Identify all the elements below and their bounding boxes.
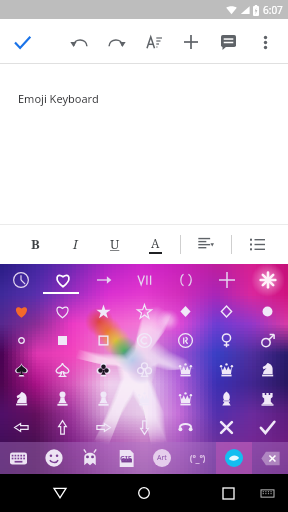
button[interactable]: bishop (206, 384, 247, 413)
button[interactable]: knightW (247, 355, 288, 384)
button[interactable]: Redo (99, 24, 135, 60)
button[interactable]: Bulleted list (244, 231, 270, 257)
button[interactable]: Category clock (0, 264, 42, 296)
button[interactable]: Keyboard (0, 442, 36, 474)
button[interactable]: Undo (61, 24, 97, 60)
button[interactable]: Text color (142, 231, 168, 257)
button[interactable]: male (247, 326, 288, 355)
staticText: GIF (120, 454, 132, 464)
button[interactable]: phone (165, 413, 206, 442)
button[interactable]: spadeO (42, 355, 83, 384)
button[interactable]: clubB (83, 355, 124, 384)
button[interactable]: Home (128, 477, 160, 509)
button[interactable]: heartF (0, 296, 42, 326)
button[interactable]: pawnO (83, 384, 124, 413)
button[interactable]: arrowU (42, 413, 83, 442)
staticText: A (151, 235, 160, 251)
button[interactable]: Back (44, 477, 76, 509)
button[interactable]: tick (247, 413, 288, 442)
button[interactable]: circleF (247, 296, 288, 326)
button[interactable]: crownW (165, 355, 206, 384)
button[interactable]: Category arrow (83, 264, 124, 296)
button[interactable]: heartO (42, 296, 83, 326)
button[interactable]: crownW3 (124, 384, 165, 413)
button[interactable]: pawnF (42, 384, 83, 413)
button[interactable]: ex (206, 413, 247, 442)
button[interactable]: Category heart (42, 264, 83, 296)
button[interactable]: Backspace (252, 442, 288, 474)
button[interactable]: Underline (102, 231, 128, 257)
button[interactable]: Text formatting (136, 24, 172, 60)
button[interactable]: Recents (212, 477, 244, 509)
button[interactable]: Category plus (206, 264, 247, 296)
button[interactable]: rook (247, 384, 288, 413)
staticText: Emoji Keyboard (18, 91, 99, 106)
staticText: U (110, 235, 120, 253)
button[interactable]: Category paren (165, 264, 206, 296)
button[interactable]: Theme (216, 442, 252, 474)
staticText: B (31, 235, 40, 253)
button[interactable]: Stickers (72, 442, 108, 474)
button[interactable]: Add (173, 24, 209, 60)
button[interactable]: starF (83, 296, 124, 326)
button[interactable]: Category numeral (124, 264, 165, 296)
button[interactable]: squareO (83, 326, 124, 355)
button[interactable]: crownW4 (165, 384, 206, 413)
button[interactable]: squareF (42, 326, 83, 355)
staticText: Art (157, 453, 167, 463)
button[interactable]: knightO (0, 384, 42, 413)
button[interactable]: starO (124, 296, 165, 326)
button[interactable]: Done (4, 24, 40, 60)
button[interactable]: Alignment (193, 231, 219, 257)
button[interactable]: crownW2 (206, 355, 247, 384)
button[interactable]: Comment (210, 24, 246, 60)
button[interactable]: Category star (247, 264, 288, 296)
button[interactable]: Switch keyboard (253, 479, 281, 507)
button[interactable]: circleO (0, 326, 42, 355)
button[interactable]: copy (124, 326, 165, 355)
staticText: 6:07 (263, 3, 283, 17)
button[interactable]: Emoji (36, 442, 72, 474)
staticText: I (73, 235, 78, 253)
button[interactable]: Italic (62, 231, 88, 257)
button[interactable]: arrowR (83, 413, 124, 442)
button[interactable]: diamondF (165, 296, 206, 326)
button[interactable]: Art (144, 442, 180, 474)
button[interactable]: Kaomoji (180, 442, 216, 474)
button[interactable]: female (206, 326, 247, 355)
button[interactable]: More options (247, 24, 283, 60)
button[interactable]: clubO (124, 355, 165, 384)
button[interactable]: GIF (108, 442, 144, 474)
button[interactable]: arrowL (0, 413, 42, 442)
button[interactable]: reg (165, 326, 206, 355)
button[interactable]: diamondO (206, 296, 247, 326)
button[interactable]: arrowD (124, 413, 165, 442)
staticText: (°_°) (190, 453, 206, 464)
button[interactable]: spadeF (0, 355, 42, 384)
button[interactable]: Bold (22, 231, 48, 257)
